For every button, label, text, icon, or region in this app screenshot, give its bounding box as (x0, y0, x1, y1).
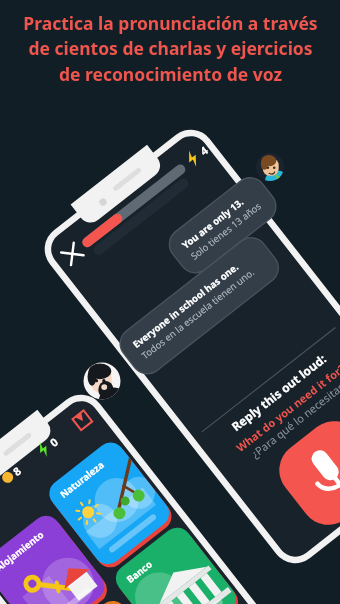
staticText: Practica la pronunciación a través de ci… (23, 11, 318, 87)
